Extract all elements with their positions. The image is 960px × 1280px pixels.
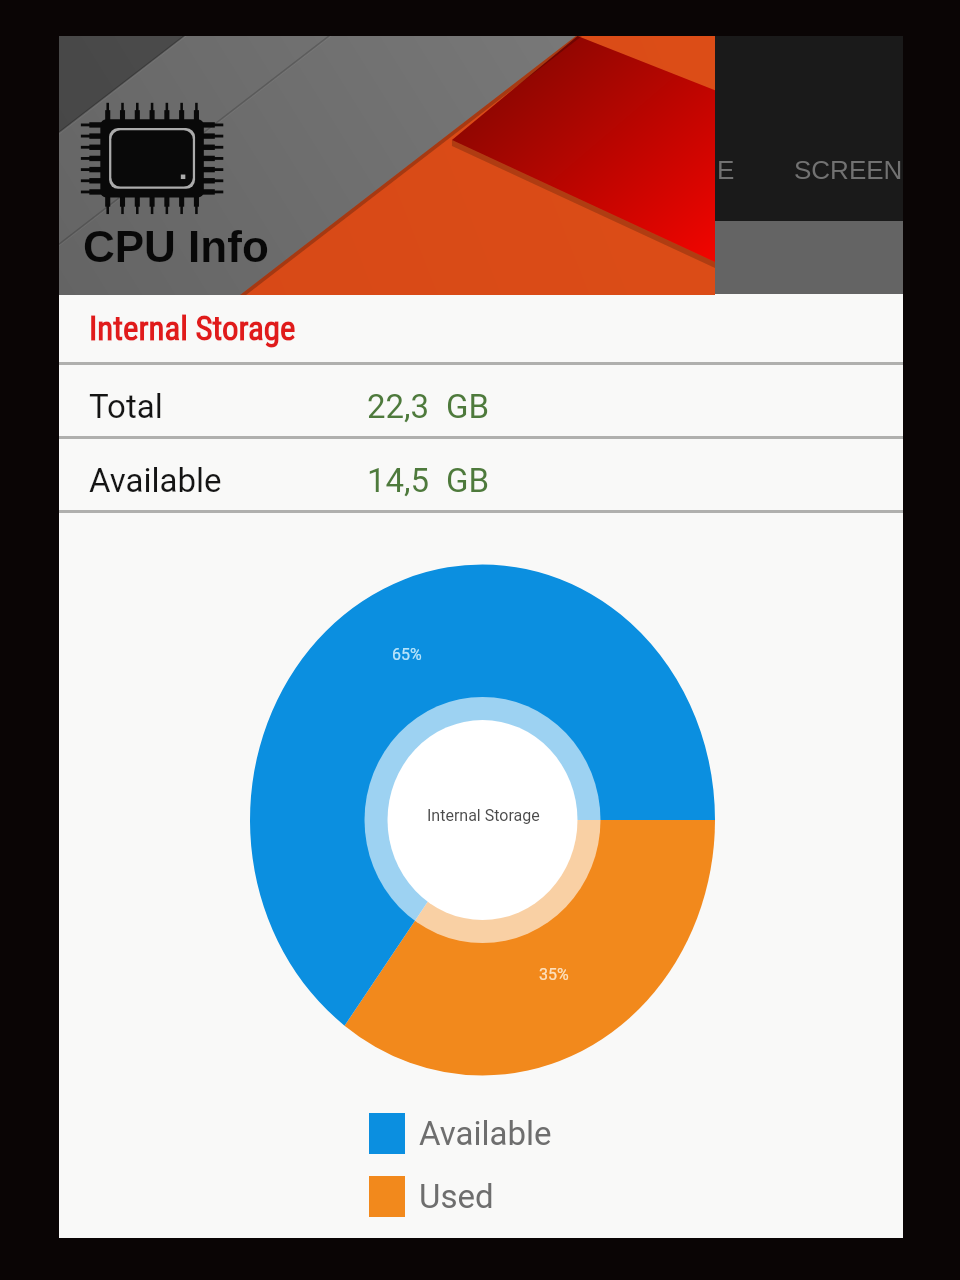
- button[interactable]: Internal Storage: [59, 294, 903, 362]
- staticText: Available: [419, 1114, 552, 1153]
- staticText: 22,3: [367, 387, 430, 426]
- staticText: CPU Info: [83, 222, 269, 271]
- button[interactable]: Available: [59, 439, 903, 510]
- staticText: SCREEN: [794, 155, 903, 184]
- staticText: 65%: [392, 645, 422, 664]
- staticText: 14,5: [367, 461, 430, 500]
- button[interactable]: E: [657, 132, 727, 206]
- staticText: GB: [446, 461, 490, 500]
- button[interactable]: Used: [59, 1165, 903, 1228]
- staticText: Available: [89, 461, 222, 500]
- button[interactable]: Total: [59, 365, 903, 436]
- button[interactable]: Available: [59, 1102, 903, 1165]
- staticText: GB: [446, 387, 490, 426]
- button[interactable]: CPU Info: [59, 36, 715, 295]
- button[interactable]: SCREEN: [769, 132, 903, 206]
- staticText: Used: [419, 1177, 494, 1216]
- staticText: Internal Storage: [427, 806, 540, 825]
- staticText: Internal Storage: [89, 309, 296, 348]
- staticText: 35%: [539, 965, 569, 984]
- staticText: Total: [89, 387, 163, 426]
- staticText: E: [717, 155, 735, 184]
